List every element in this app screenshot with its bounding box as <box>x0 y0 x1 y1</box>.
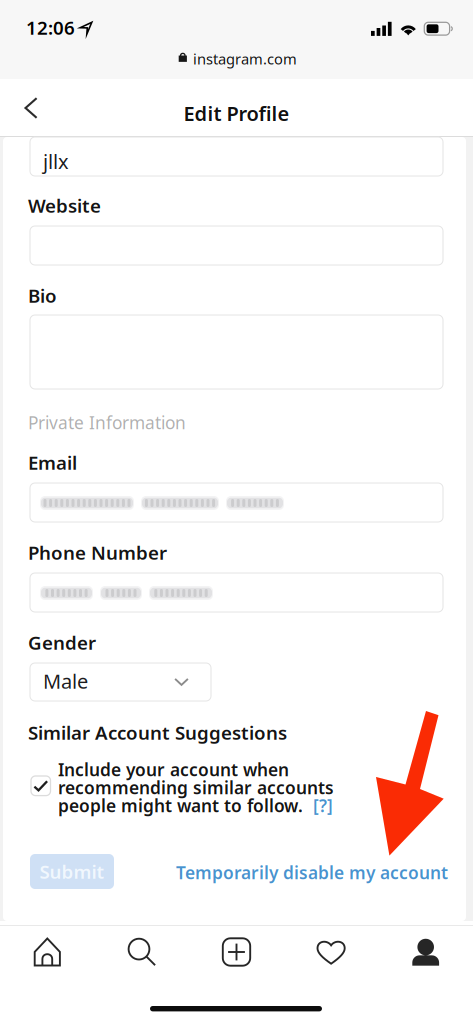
staticText: Include your account when <box>58 758 289 781</box>
button[interactable]: Back <box>9 86 53 130</box>
staticText: Private Information <box>28 411 186 434</box>
button[interactable]: Male <box>30 663 211 701</box>
staticText: Email <box>28 450 77 475</box>
button[interactable]: Activity <box>284 928 378 976</box>
staticText: 12:06 <box>26 15 75 40</box>
button[interactable]: Search <box>95 928 189 976</box>
staticText: Male <box>43 668 88 694</box>
staticText: Edit Profile <box>183 100 289 127</box>
button[interactable]: Home <box>0 928 95 976</box>
button[interactable]: More information <box>313 794 333 817</box>
staticText: [?] <box>313 794 333 817</box>
button[interactable]: Profile <box>378 928 473 976</box>
button[interactable]: Similar account suggestions <box>31 776 50 796</box>
staticText: Website <box>28 193 101 218</box>
button[interactable]: New post <box>189 928 284 976</box>
staticText: Gender <box>28 630 96 655</box>
staticText: Bio <box>28 283 57 308</box>
staticText: Similar Account Suggestions <box>28 720 287 745</box>
staticText: recommending similar accounts <box>58 776 334 799</box>
staticText: Temporarily disable my account <box>176 861 448 884</box>
staticText: jllx <box>43 148 69 175</box>
button[interactable]: Submit <box>30 854 114 889</box>
staticText: Phone Number <box>28 540 167 565</box>
staticText: instagram.com <box>193 49 297 68</box>
staticText: people might want to follow. <box>58 794 303 817</box>
button[interactable]: Temporarily disable my account <box>176 861 448 884</box>
staticText: Submit <box>39 859 104 884</box>
